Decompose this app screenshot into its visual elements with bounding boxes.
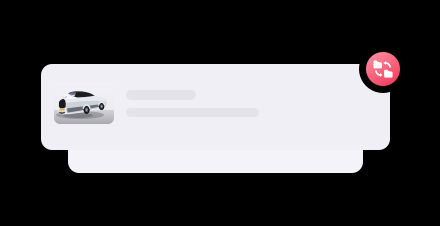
button[interactable]: Swap vehicle [366, 52, 400, 86]
button[interactable] [41, 64, 390, 150]
